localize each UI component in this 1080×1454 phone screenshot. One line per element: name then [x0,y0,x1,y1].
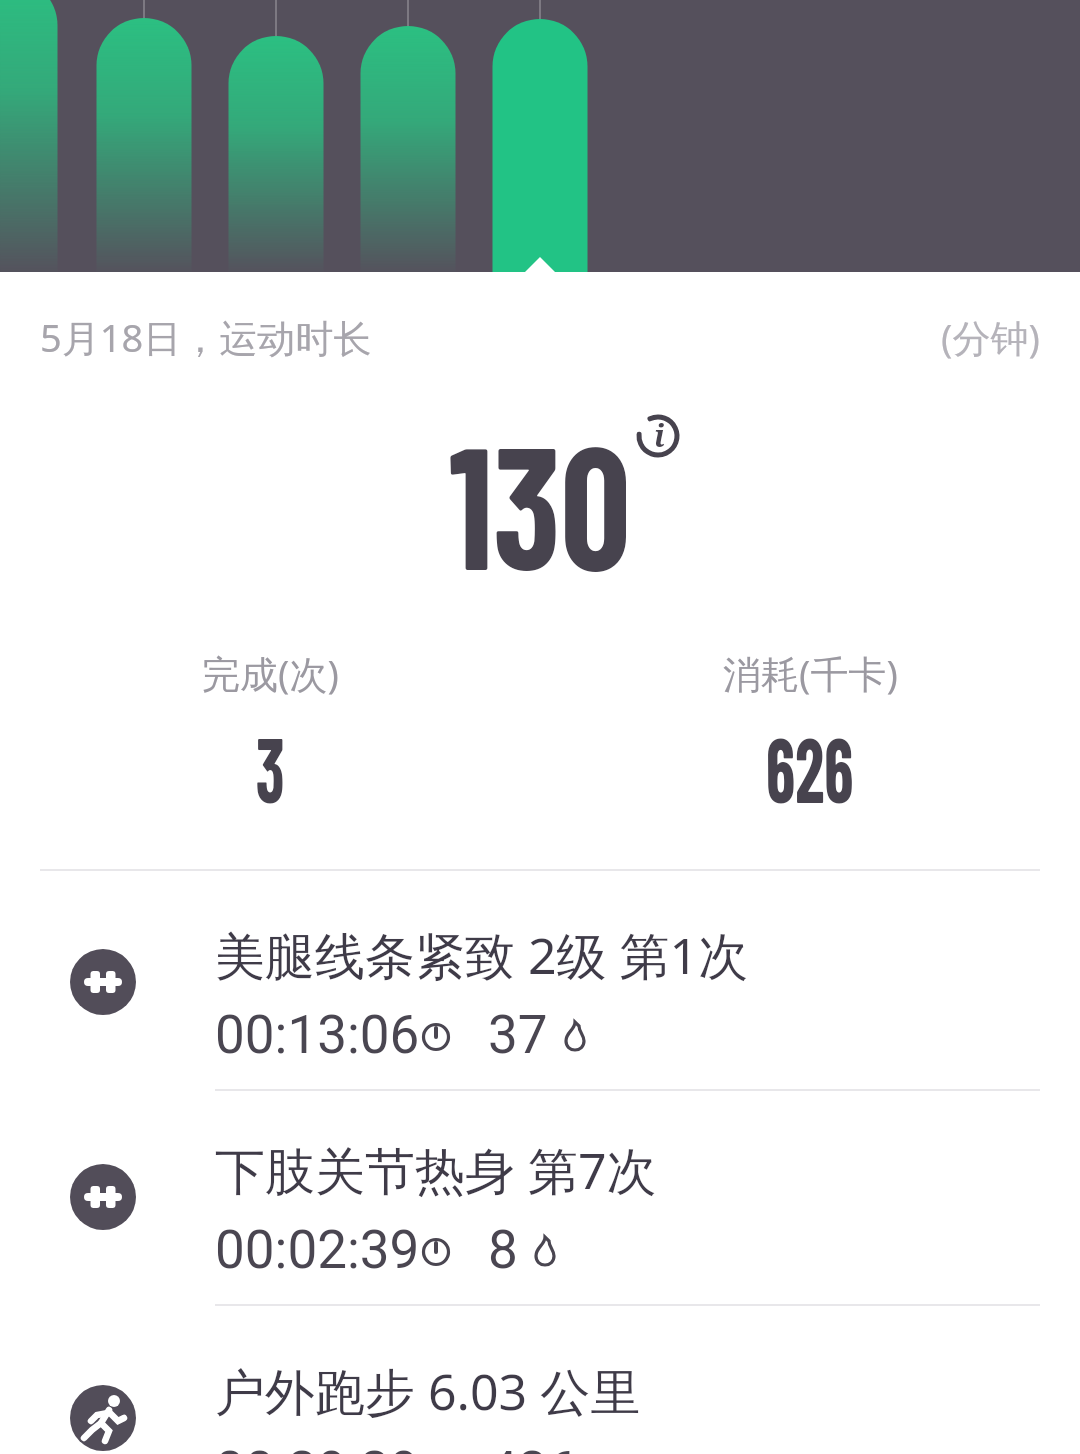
staticText: i [654,415,665,456]
staticText: 130 [449,398,631,604]
button[interactable] [491,0,586,272]
staticText: 完成(次) [202,647,339,699]
staticText: 00:39:29 [215,1440,420,1454]
staticText: 户外跑步 6.03 公里 [215,1357,641,1425]
staticText: 美腿线条紧致 2级 第1次 [215,921,749,989]
staticText: 626 [766,711,854,821]
staticText: 下肢关节热身 第7次 [215,1136,657,1204]
staticText: 436 [488,1440,578,1454]
staticText: 00:13:06 [215,1004,420,1066]
staticText: 8 [488,1219,518,1281]
staticText: 37 [488,1004,548,1066]
staticText: 00:02:39 [215,1219,420,1281]
button[interactable]: 美腿线条紧致 2级 第1次 [0,916,1080,1096]
button[interactable] [227,0,322,272]
button[interactable] [0,0,58,272]
staticText: 5月18日，运动时长 [40,311,372,363]
button[interactable] [359,0,454,272]
button[interactable]: 户外跑步 6.03 公里 [0,1352,1080,1454]
button[interactable]: i [636,414,680,458]
button[interactable] [95,0,190,272]
staticText: 3 [256,711,285,821]
staticText: 消耗(千卡) [723,647,898,699]
button[interactable]: 下肢关节热身 第7次 [0,1131,1080,1311]
staticText: (分钟) [941,311,1040,363]
